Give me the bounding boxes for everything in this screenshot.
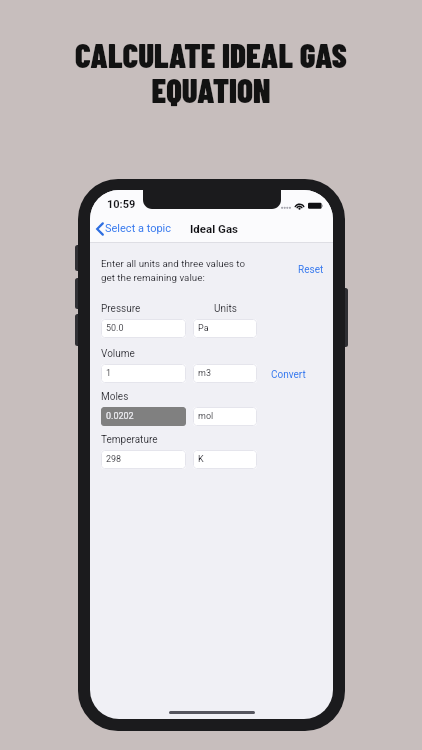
other: Battery: [308, 201, 323, 210]
button[interactable]: K: [193, 450, 257, 469]
button[interactable]: m3: [193, 364, 257, 383]
staticText: Ideal Gas: [190, 222, 239, 235]
staticText: Temperature: [101, 434, 158, 446]
button[interactable]: 1: [101, 364, 186, 383]
other: Cellular signal: [281, 201, 291, 210]
staticText: m3: [198, 368, 211, 379]
staticText: 10:59: [107, 198, 136, 211]
button[interactable]: Reset: [296, 262, 326, 278]
staticText: CALCULATE IDEAL GAS EQUATION: [75, 35, 347, 110]
staticText: Moles: [101, 391, 129, 403]
other: Wi-Fi: [294, 201, 305, 210]
staticText: 298: [106, 454, 122, 465]
button[interactable]: Convert: [269, 367, 308, 383]
button[interactable]: Select a topic: [90, 216, 178, 240]
staticText: Units: [214, 303, 237, 315]
button[interactable]: Pa: [193, 319, 257, 338]
button[interactable]: 50.0: [101, 319, 186, 338]
staticText: Volume: [101, 348, 135, 360]
staticText: 1: [106, 368, 112, 379]
staticText: K: [198, 454, 204, 465]
staticText: Pa: [198, 323, 209, 334]
button[interactable]: 298: [101, 450, 186, 469]
staticText: 0.0202: [106, 411, 134, 422]
staticText: Enter all units and three values to get …: [101, 258, 246, 283]
button[interactable]: mol: [193, 407, 257, 426]
button[interactable]: 0.0202: [101, 407, 186, 426]
staticText: Pressure: [101, 303, 141, 315]
staticText: 50.0: [106, 323, 124, 334]
staticText: mol: [198, 411, 214, 422]
staticText: Select a topic: [105, 222, 172, 235]
